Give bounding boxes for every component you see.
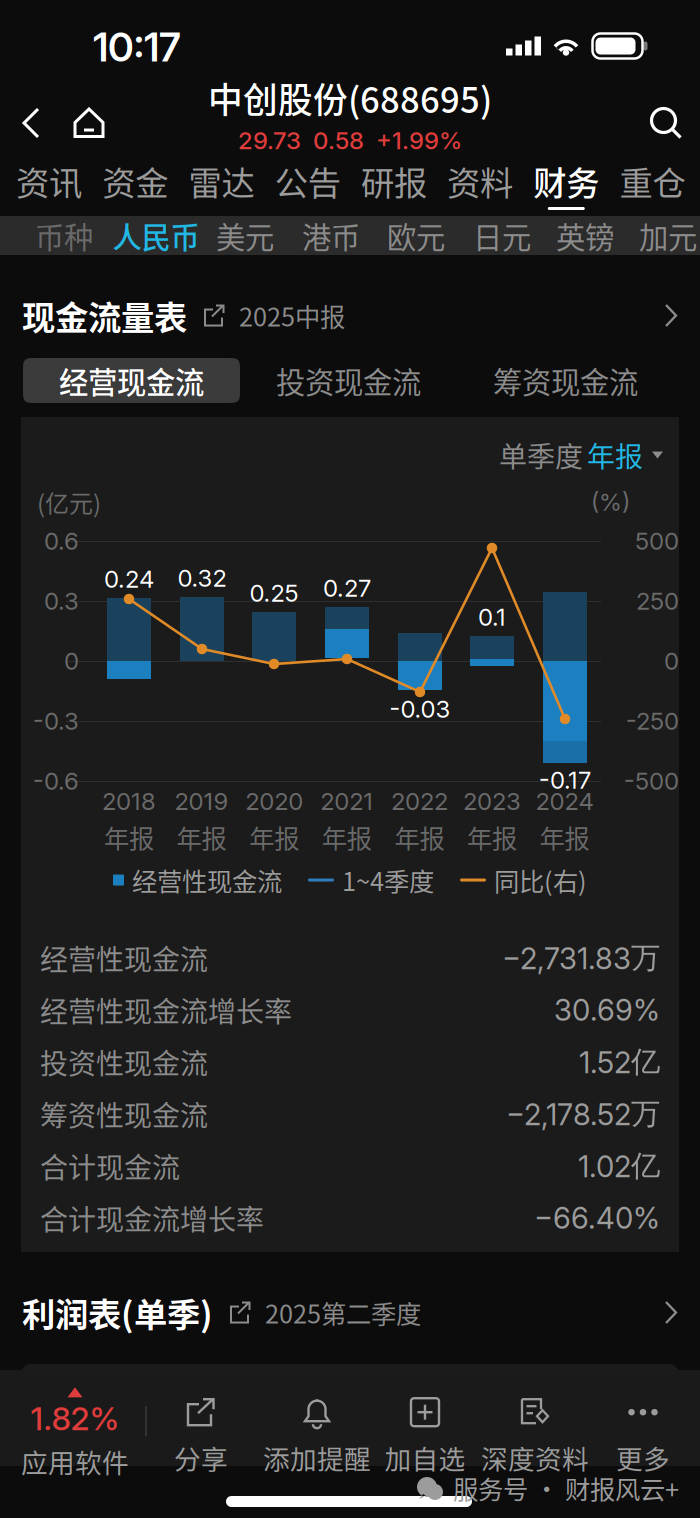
- staticText: 港币: [302, 214, 360, 257]
- button[interactable]: 分享: [147, 1388, 255, 1484]
- staticText: 美元: [216, 214, 274, 257]
- button[interactable]: 公告: [265, 158, 351, 216]
- staticText: 1~4季度: [342, 862, 434, 898]
- button[interactable]: 服务号 · 财报风云+: [415, 1471, 679, 1505]
- button[interactable]: 单季度: [476, 440, 606, 470]
- button[interactable]: 日元: [456, 217, 548, 253]
- staticText: 2023: [463, 787, 521, 816]
- staticText: 利润表(单季): [22, 1288, 213, 1337]
- staticText: 1.52亿: [579, 1043, 660, 1080]
- staticText: −2,731.83万: [502, 939, 660, 976]
- button[interactable]: 投资现金流: [240, 358, 457, 403]
- button[interactable]: 欧元: [370, 217, 462, 253]
- staticText: 年报: [540, 819, 590, 855]
- button[interactable]: 人民币: [110, 217, 202, 253]
- staticText: (%): [591, 487, 630, 516]
- button[interactable]: 英镑: [539, 217, 631, 253]
- staticText: 更多: [616, 1438, 670, 1477]
- staticText: 0.32: [177, 563, 226, 592]
- button[interactable]: 更多: [589, 1388, 697, 1484]
- button[interactable]: 现金流量表: [0, 255, 700, 352]
- staticText: 英镑: [556, 214, 614, 257]
- staticText: 2021: [320, 787, 373, 816]
- button[interactable]: 研报: [351, 158, 437, 216]
- staticText: 0: [64, 646, 79, 675]
- staticText: 0.3: [44, 586, 79, 615]
- button[interactable]: 年报: [580, 440, 670, 470]
- staticText: 年报: [177, 819, 227, 855]
- staticText: 研报: [361, 157, 427, 205]
- staticText: -0.3: [33, 706, 79, 735]
- staticText: -500: [624, 766, 679, 795]
- staticText: 年报: [104, 819, 154, 855]
- button[interactable]: 资讯: [6, 158, 92, 216]
- staticText: 经营现金流: [59, 359, 204, 402]
- staticText: 0.27: [323, 573, 371, 602]
- button[interactable]: 筹资现金流: [457, 358, 674, 403]
- staticText: 投资现金流: [276, 359, 421, 402]
- staticText: 同比(右): [494, 862, 587, 898]
- staticText: 日元: [473, 214, 531, 257]
- staticText: 2020: [245, 787, 303, 816]
- staticText: (亿元): [37, 485, 101, 519]
- staticText: 0: [664, 646, 679, 675]
- staticText: 资料: [447, 157, 513, 205]
- staticText: 经营性现金流增长率: [40, 990, 292, 1030]
- staticText: 服务号 · 财报风云+: [453, 1470, 679, 1506]
- staticText: 0.24: [104, 564, 154, 593]
- staticText: 投资性现金流: [40, 1042, 208, 1082]
- staticText: 现金流量表: [22, 291, 187, 340]
- button[interactable]: 首页: [58, 90, 120, 155]
- staticText: 2018: [102, 787, 156, 816]
- button[interactable]: 添加提醒: [263, 1388, 371, 1484]
- staticText: 29.73 0.58 +1.99%: [238, 126, 462, 155]
- staticText: −2,178.52万: [506, 1095, 660, 1132]
- staticText: 中创股份(688695): [208, 73, 492, 123]
- staticText: 0.25: [249, 578, 298, 607]
- button[interactable]: 加自选: [371, 1388, 479, 1484]
- staticText: 筹资性现金流: [40, 1094, 208, 1134]
- staticText: 分享: [174, 1438, 228, 1477]
- staticText: 公告: [275, 157, 341, 205]
- staticText: 加自选: [384, 1438, 465, 1477]
- button[interactable]: 币种: [18, 217, 110, 253]
- staticText: 2025第二季度: [265, 1294, 421, 1331]
- staticText: 1.82%: [30, 1399, 119, 1438]
- staticText: 经营性现金流: [132, 862, 282, 898]
- staticText: −66.40%: [534, 1200, 660, 1236]
- button[interactable]: 重仓: [609, 158, 696, 216]
- staticText: -0.6: [33, 766, 79, 795]
- button[interactable]: 港币: [285, 217, 377, 253]
- staticText: 加元: [639, 214, 697, 257]
- button[interactable]: 资料: [437, 158, 523, 216]
- button[interactable]: 搜索: [633, 90, 698, 155]
- staticText: 10:17: [93, 23, 181, 71]
- staticText: 经营性现金流: [40, 938, 208, 978]
- staticText: 2022: [391, 787, 448, 816]
- button[interactable]: 利润表(单季): [0, 1252, 700, 1349]
- staticText: 250: [636, 586, 679, 615]
- button[interactable]: 返回: [0, 87, 62, 159]
- staticText: 30.69%: [554, 992, 660, 1028]
- staticText: -0.17: [539, 765, 591, 794]
- staticText: 1.02亿: [578, 1147, 660, 1184]
- staticText: 应用软件: [21, 1442, 129, 1481]
- button[interactable]: 1.82%: [0, 1386, 150, 1482]
- button[interactable]: 雷达: [178, 158, 265, 216]
- button[interactable]: 美元: [199, 217, 291, 253]
- button[interactable]: 经营现金流: [23, 358, 240, 403]
- staticText: 500: [635, 526, 679, 555]
- staticText: 币种: [35, 214, 93, 257]
- staticText: 年报: [587, 435, 643, 475]
- button[interactable]: 财务: [523, 158, 609, 216]
- staticText: -250: [626, 706, 679, 735]
- button[interactable]: 加元: [622, 217, 700, 253]
- button[interactable]: 深度资料: [481, 1388, 589, 1484]
- staticText: 合计现金流: [40, 1146, 180, 1186]
- staticText: 筹资现金流: [493, 359, 638, 402]
- button[interactable]: 资金: [92, 158, 178, 216]
- staticText: 深度资料: [481, 1438, 589, 1477]
- staticText: -0.03: [389, 694, 450, 723]
- staticText: 资讯: [16, 157, 82, 205]
- staticText: 2024: [536, 787, 594, 816]
